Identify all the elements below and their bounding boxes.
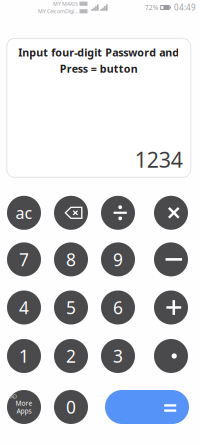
- button[interactable]: Divide: [101, 196, 135, 230]
- staticText: More: [15, 399, 32, 407]
- staticText: 5: [66, 296, 76, 319]
- button[interactable]: More Apps: [7, 390, 41, 424]
- button[interactable]: 4: [7, 290, 41, 324]
- button[interactable]: 0: [54, 390, 88, 424]
- staticText: AD: [10, 393, 17, 400]
- staticText: 1: [19, 344, 29, 367]
- button[interactable]: 1: [7, 339, 41, 373]
- staticText: 6: [113, 296, 123, 319]
- button[interactable]: All clear: [7, 196, 41, 230]
- staticText: ac: [15, 202, 32, 223]
- button[interactable]: Decimal point: [154, 339, 188, 373]
- staticText: Press = button: [60, 62, 138, 76]
- staticText: 4: [19, 296, 29, 319]
- staticText: 8: [66, 248, 76, 271]
- button[interactable]: Multiply: [154, 196, 188, 230]
- button[interactable]: 9: [101, 242, 135, 276]
- staticText: 2: [66, 344, 76, 367]
- staticText: 3: [113, 344, 123, 367]
- staticText: 04:49: [174, 2, 196, 13]
- staticText: 7: [19, 248, 29, 271]
- button[interactable]: 6: [101, 290, 135, 324]
- staticText: MY MAXIS: [53, 0, 78, 7]
- button[interactable]: 8: [54, 242, 88, 276]
- staticText: Apps: [16, 406, 31, 415]
- button[interactable]: Equals: [105, 390, 189, 424]
- button[interactable]: 3: [101, 339, 135, 373]
- staticText: Input four-digit Password and: [18, 45, 179, 60]
- button[interactable]: 7: [7, 242, 41, 276]
- staticText: MY CelcomDigi ...: [38, 8, 78, 15]
- staticText: 9: [113, 248, 123, 271]
- button[interactable]: Plus: [154, 290, 188, 324]
- staticText: 0: [66, 395, 76, 418]
- staticText: 1234: [135, 145, 183, 173]
- button[interactable]: 5: [54, 290, 88, 324]
- button[interactable]: Minus: [154, 242, 188, 276]
- button[interactable]: 2: [54, 339, 88, 373]
- staticText: 72%: [145, 3, 159, 12]
- button[interactable]: Backspace: [54, 196, 88, 230]
